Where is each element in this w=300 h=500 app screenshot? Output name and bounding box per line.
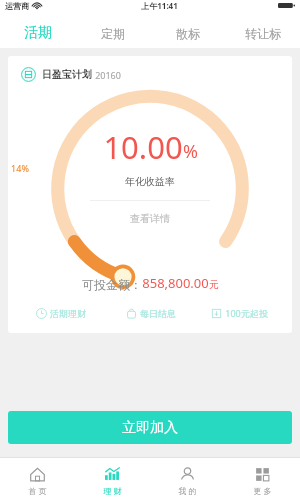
- staticText: 运营商: [5, 1, 29, 11]
- staticText: 上午11:41: [141, 0, 178, 11]
- button[interactable]: 每日结息: [106, 308, 195, 319]
- staticText: 转让标: [245, 26, 281, 41]
- staticText: 10.00: [103, 126, 183, 168]
- staticText: 活期理财: [50, 308, 86, 319]
- staticText: 日盈宝计划: [42, 68, 92, 81]
- staticText: 100元起投: [225, 307, 268, 319]
- button[interactable]: 转让标: [225, 18, 300, 48]
- staticText: 元: [209, 278, 219, 291]
- button[interactable]: 首页: [0, 462, 75, 496]
- staticText: 首 页: [28, 485, 47, 496]
- staticText: 散标: [176, 26, 200, 41]
- staticText: 858,800.00: [142, 274, 209, 292]
- staticText: 年化收益率: [125, 175, 175, 188]
- staticText: 立即加入: [122, 419, 178, 437]
- button[interactable]: 理财: [75, 462, 150, 496]
- button[interactable]: 活期: [0, 18, 75, 48]
- staticText: 20160: [95, 69, 121, 81]
- staticText: 更 多: [253, 485, 272, 496]
- button[interactable]: 活期理财: [16, 308, 106, 319]
- staticText: 可投金额：: [82, 277, 142, 292]
- staticText: 活期: [24, 24, 52, 42]
- staticText: 查看详情: [130, 212, 170, 225]
- button[interactable]: 散标: [150, 18, 225, 48]
- staticText: %: [183, 139, 198, 164]
- button[interactable]: 我的: [150, 462, 225, 496]
- button[interactable]: 日盈宝计划: [8, 56, 292, 333]
- staticText: 理 财: [103, 485, 122, 496]
- button[interactable]: 立即加入: [8, 411, 292, 444]
- staticText: 我 的: [178, 485, 197, 496]
- button[interactable]: 定期: [75, 18, 150, 48]
- staticText: 14%: [11, 162, 29, 174]
- button[interactable]: 更多: [225, 462, 300, 496]
- staticText: 每日结息: [140, 308, 176, 319]
- staticText: 定期: [101, 26, 125, 41]
- button[interactable]: 100元起投: [195, 307, 284, 319]
